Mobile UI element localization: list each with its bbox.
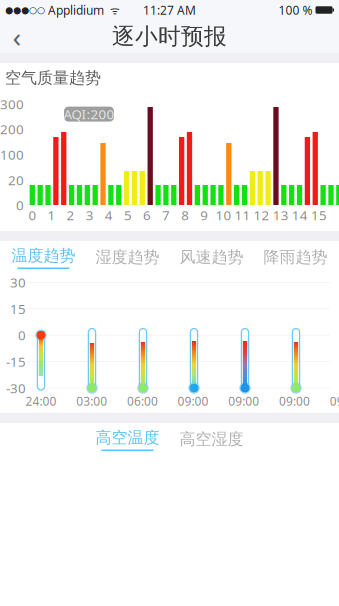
staticText: 4 bbox=[105, 206, 113, 224]
button[interactable]: Back bbox=[0, 18, 34, 55]
staticText: 逐小时预报 bbox=[112, 23, 227, 50]
staticText: 高空温度 bbox=[95, 428, 159, 447]
staticText: 100 bbox=[0, 146, 24, 163]
staticText: Applidium bbox=[45, 2, 104, 18]
staticText: 200 bbox=[0, 120, 24, 138]
staticText: 20 bbox=[8, 171, 24, 189]
button[interactable]: 湿度趋势 bbox=[85, 241, 169, 269]
staticText: 09:00 bbox=[178, 393, 209, 409]
staticText: 300 bbox=[0, 95, 24, 113]
staticText: 9 bbox=[200, 206, 208, 224]
staticText: ●●●○○ bbox=[5, 5, 45, 15]
staticText: 12 bbox=[254, 206, 270, 224]
staticText: 湿度趋势 bbox=[95, 247, 159, 267]
staticText: ‹ bbox=[12, 18, 21, 55]
staticText: 10 bbox=[215, 206, 231, 224]
staticText: 3 bbox=[86, 206, 94, 224]
staticText: 6 bbox=[143, 206, 151, 224]
staticText: 24:00 bbox=[25, 393, 56, 409]
button[interactable]: 高空温度 bbox=[85, 423, 169, 451]
button[interactable]: 降雨趋势 bbox=[253, 241, 337, 269]
staticText: AQI:200 bbox=[63, 105, 114, 123]
staticText: 0 bbox=[28, 206, 36, 224]
staticText: 0 bbox=[16, 196, 24, 214]
staticText: 温度趋势 bbox=[11, 246, 75, 265]
staticText: 0 bbox=[18, 326, 26, 344]
staticText: 15 bbox=[311, 206, 327, 224]
staticText: 14 bbox=[292, 206, 308, 224]
staticText: 风速趋势 bbox=[179, 247, 243, 267]
staticText: 8 bbox=[181, 206, 189, 224]
staticText: 7 bbox=[162, 206, 170, 224]
staticText: 高空湿度 bbox=[179, 429, 243, 449]
staticText: 空气质量趋势 bbox=[5, 68, 101, 88]
staticText: -15 bbox=[6, 353, 26, 370]
staticText: 2 bbox=[67, 206, 75, 224]
button[interactable]: 温度趋势 bbox=[1, 241, 85, 269]
staticText: 09:00 bbox=[228, 393, 259, 409]
staticText: 5 bbox=[124, 206, 132, 224]
staticText: 11:27 AM bbox=[143, 2, 196, 18]
staticText: 09:00 bbox=[279, 393, 310, 409]
button[interactable]: 风速趋势 bbox=[169, 241, 253, 269]
staticText: 1 bbox=[47, 206, 55, 224]
staticText: 降雨趋势 bbox=[263, 247, 327, 267]
button[interactable]: 高空湿度 bbox=[169, 423, 253, 451]
staticText: 13 bbox=[273, 206, 289, 224]
staticText: 100 % bbox=[278, 2, 312, 18]
staticText: 09:00 bbox=[330, 393, 339, 409]
staticText: ᯤ bbox=[104, 3, 120, 17]
staticText: 30 bbox=[10, 273, 26, 291]
staticText: -30 bbox=[6, 379, 26, 397]
staticText: 15 bbox=[10, 300, 26, 318]
staticText: 03:00 bbox=[76, 393, 107, 409]
staticText: 06:00 bbox=[127, 393, 158, 409]
staticText: 11 bbox=[234, 206, 250, 224]
